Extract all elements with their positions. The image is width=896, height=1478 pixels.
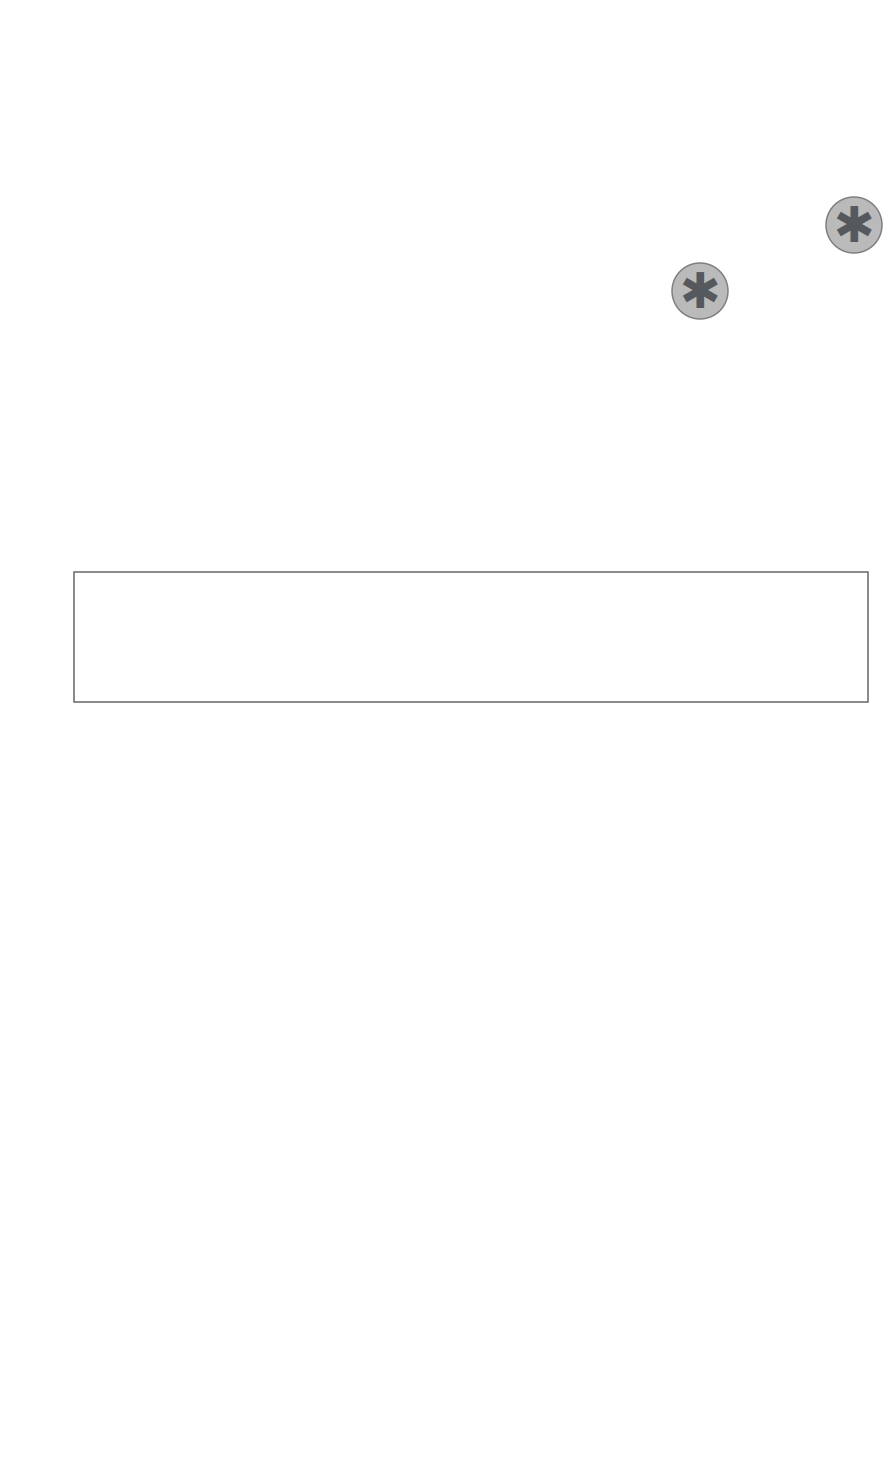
staticText: ✱ bbox=[679, 263, 720, 319]
staticText: ✱ bbox=[833, 197, 874, 253]
button[interactable]: Message sender bbox=[826, 197, 882, 253]
button[interactable]: Message field bbox=[74, 572, 868, 702]
button[interactable]: Message sender bbox=[672, 263, 728, 319]
